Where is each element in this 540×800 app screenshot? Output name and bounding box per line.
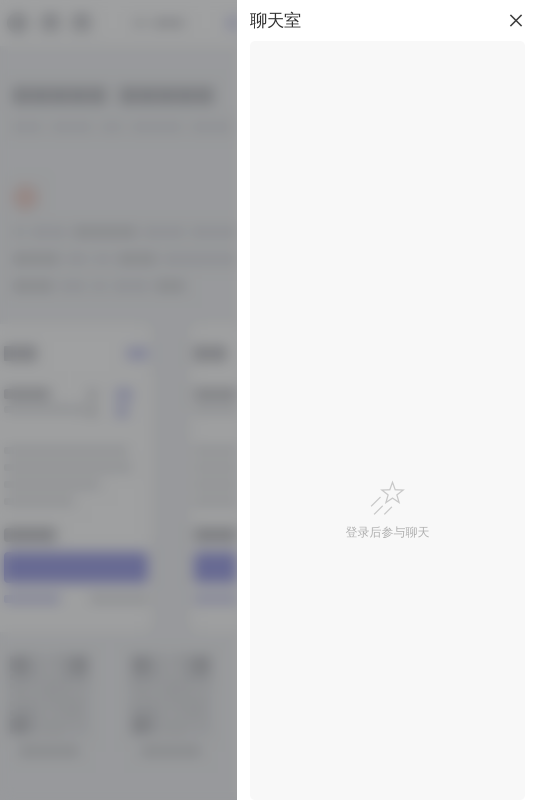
staticText: 聊天室 (250, 10, 301, 31)
staticText: 登录后参与聊天 (345, 525, 429, 540)
button[interactable]: 关闭 (500, 4, 532, 36)
